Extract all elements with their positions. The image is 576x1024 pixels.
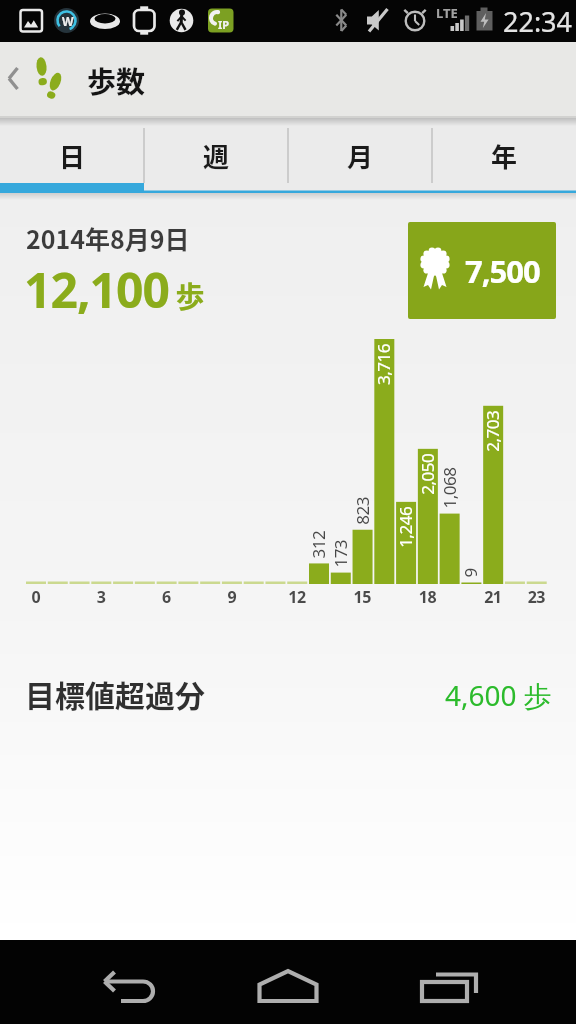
button[interactable]: 月 [288,118,432,193]
button[interactable] [192,940,384,1024]
button[interactable] [0,940,192,1024]
staticText: 月 [347,137,374,175]
button[interactable]: 週 [144,118,288,193]
button[interactable] [0,42,576,118]
staticText: 歩数 [87,59,146,101]
staticText: 12,100 歩 [24,257,205,322]
staticText: 週 [203,137,230,175]
button[interactable]: 日 [0,118,144,193]
staticText: 22:34 [503,3,573,40]
button[interactable] [384,940,576,1024]
staticText: 目標値超過分 [25,672,205,715]
staticText: 2014年8月9日 [26,220,190,256]
button[interactable]: 年 [432,118,576,193]
button[interactable]: 7,500 [408,222,556,319]
staticText: 7,500 [465,250,540,292]
staticText: 日 [59,137,86,175]
staticText: 4,600 歩 [445,676,552,714]
staticText: 年 [491,137,518,175]
